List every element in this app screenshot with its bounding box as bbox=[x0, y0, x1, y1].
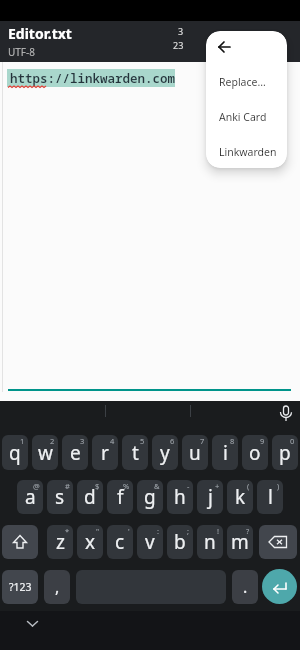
button[interactable]: u bbox=[182, 435, 208, 470]
staticText: y bbox=[160, 440, 170, 466]
staticText: l bbox=[268, 484, 273, 510]
button[interactable]: x bbox=[77, 525, 103, 559]
staticText: $ bbox=[95, 481, 100, 491]
staticText: 3 bbox=[178, 25, 184, 37]
staticText: x bbox=[85, 529, 96, 555]
staticText: c bbox=[115, 529, 125, 555]
staticText: @ bbox=[33, 481, 40, 491]
staticText: m bbox=[231, 529, 249, 555]
button[interactable]: n bbox=[197, 525, 223, 559]
staticText: https://linkwarden.com bbox=[10, 70, 175, 87]
staticText: 2 bbox=[50, 436, 55, 446]
button[interactable] bbox=[26, 620, 39, 628]
button[interactable]: w bbox=[32, 435, 58, 470]
button[interactable]: z bbox=[47, 525, 73, 559]
button[interactable]: q bbox=[2, 435, 28, 470]
staticText: w bbox=[38, 440, 53, 466]
button[interactable]: v bbox=[137, 525, 163, 559]
button[interactable]: a bbox=[17, 480, 43, 514]
staticText: + bbox=[215, 481, 220, 491]
staticText: 5 bbox=[140, 436, 145, 446]
staticText: v bbox=[145, 529, 155, 555]
staticText: ? bbox=[246, 526, 250, 536]
staticText: 4 bbox=[110, 436, 115, 446]
staticText: 7 bbox=[200, 436, 205, 446]
button[interactable]: ?123 bbox=[2, 570, 38, 604]
staticText: 23 bbox=[173, 39, 184, 51]
button[interactable]: s bbox=[47, 480, 73, 514]
staticText: # bbox=[65, 481, 70, 491]
staticText: 0 bbox=[290, 436, 295, 446]
staticText: . bbox=[243, 576, 248, 598]
staticText: Linkwarden bbox=[219, 145, 277, 159]
staticText: q bbox=[9, 440, 21, 466]
staticText: r bbox=[101, 440, 109, 466]
staticText: t bbox=[132, 440, 139, 466]
button[interactable]: b bbox=[167, 525, 193, 559]
button[interactable]: t bbox=[122, 435, 148, 470]
button[interactable]: Replace… bbox=[206, 68, 287, 96]
staticText: ) bbox=[277, 481, 280, 491]
staticText: i bbox=[223, 440, 228, 466]
button[interactable]: r bbox=[92, 435, 118, 470]
button[interactable]: y bbox=[152, 435, 178, 470]
button[interactable]: https://linkwarden.com bbox=[7, 69, 175, 87]
button[interactable]: g bbox=[137, 480, 163, 514]
button[interactable]: i bbox=[212, 435, 238, 470]
button[interactable] bbox=[262, 569, 297, 604]
staticText: 1 bbox=[20, 436, 25, 446]
staticText: h bbox=[174, 484, 186, 510]
button[interactable]: p bbox=[272, 435, 298, 470]
staticText: " bbox=[96, 526, 100, 536]
staticText: ( bbox=[247, 481, 250, 491]
staticText: Anki Card bbox=[219, 110, 267, 124]
staticText: ' bbox=[128, 526, 130, 536]
staticText: d bbox=[84, 484, 96, 510]
staticText: ; bbox=[187, 526, 190, 536]
staticText: s bbox=[55, 484, 65, 510]
button[interactable]: , bbox=[44, 570, 70, 604]
staticText: f bbox=[117, 484, 124, 510]
staticText: n bbox=[204, 529, 216, 555]
staticText: o bbox=[249, 440, 261, 466]
staticText: 3 bbox=[80, 436, 85, 446]
button[interactable]: h bbox=[167, 480, 193, 514]
button[interactable]: . bbox=[232, 570, 258, 604]
staticText: & bbox=[154, 481, 160, 491]
staticText: u bbox=[189, 440, 201, 466]
staticText: ! bbox=[217, 526, 220, 536]
staticText: % bbox=[123, 481, 130, 491]
button[interactable] bbox=[259, 525, 297, 559]
button[interactable]: m bbox=[227, 525, 253, 559]
staticText: - bbox=[187, 481, 190, 491]
button[interactable] bbox=[2, 525, 38, 559]
button[interactable]: Linkwarden bbox=[206, 138, 287, 166]
button[interactable]: k bbox=[227, 480, 253, 514]
staticText: : bbox=[157, 526, 160, 536]
button[interactable]: d bbox=[77, 480, 103, 514]
staticText: 8 bbox=[230, 436, 235, 446]
staticText: p bbox=[279, 440, 291, 466]
staticText: Editor.txt bbox=[8, 24, 72, 43]
button[interactable]: f bbox=[107, 480, 133, 514]
button[interactable]: l bbox=[257, 480, 283, 514]
staticText: a bbox=[25, 484, 36, 510]
staticText: Replace… bbox=[219, 75, 266, 89]
staticText: , bbox=[55, 576, 60, 598]
staticText: g bbox=[144, 484, 156, 510]
button[interactable]: Anki Card bbox=[206, 103, 287, 131]
button[interactable]: o bbox=[242, 435, 268, 470]
button[interactable]: e bbox=[62, 435, 88, 470]
staticText: z bbox=[56, 529, 65, 555]
staticText: b bbox=[174, 529, 186, 555]
staticText: UTF-8 bbox=[8, 45, 35, 59]
button[interactable]: j bbox=[197, 480, 223, 514]
staticText: 9 bbox=[260, 436, 265, 446]
button[interactable] bbox=[210, 35, 238, 59]
staticText: * bbox=[65, 526, 70, 536]
button[interactable] bbox=[279, 405, 293, 425]
staticText: e bbox=[70, 440, 81, 466]
button[interactable]: c bbox=[107, 525, 133, 559]
staticText: k bbox=[235, 484, 246, 510]
